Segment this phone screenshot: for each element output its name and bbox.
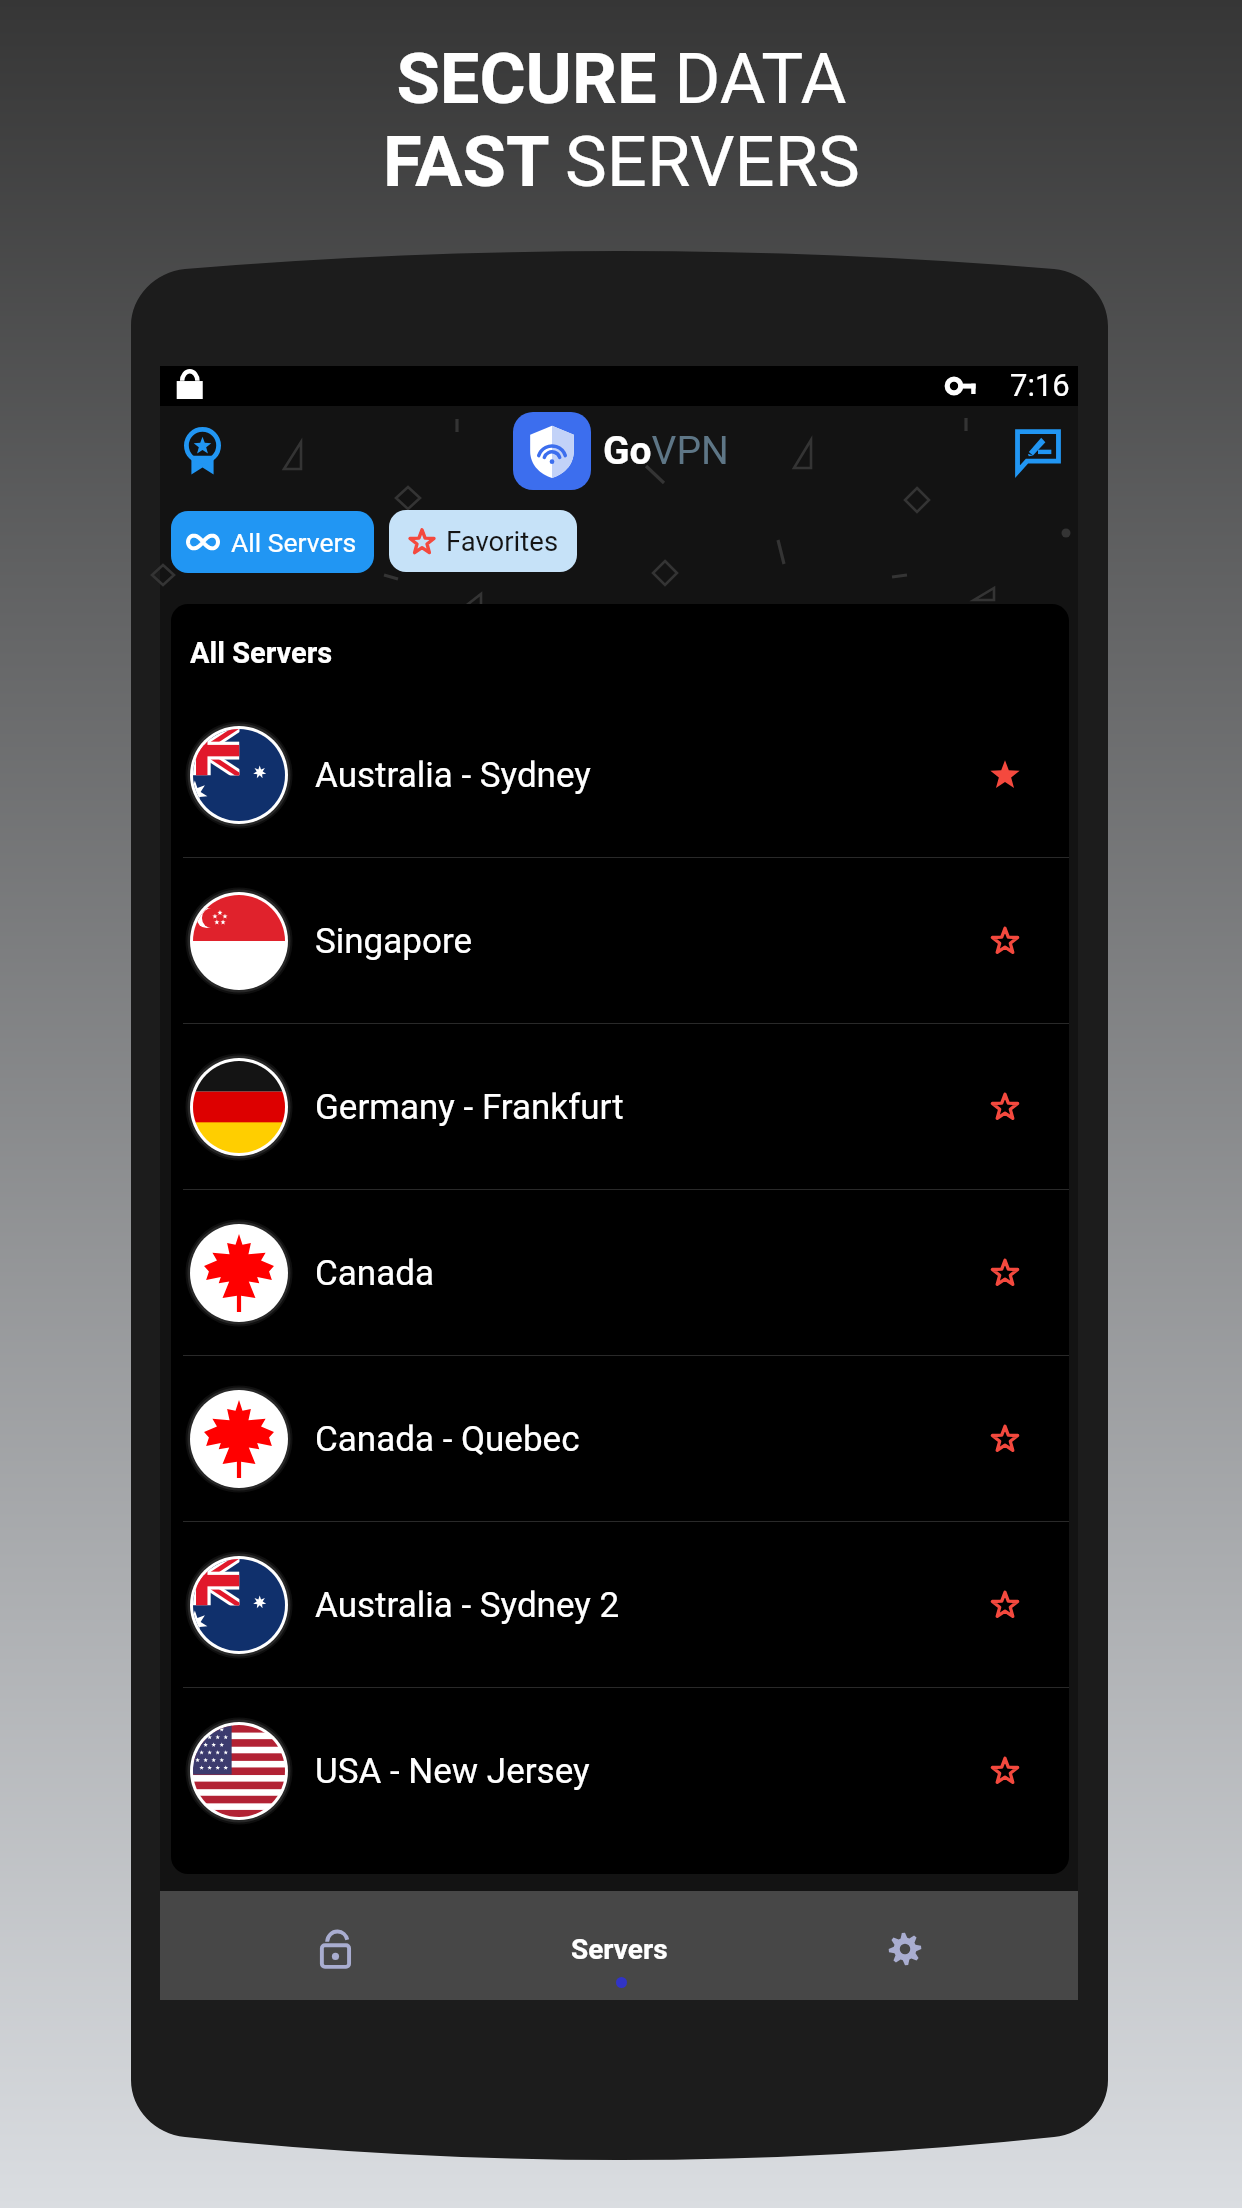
button[interactable]: Favorite xyxy=(940,1024,1069,1190)
button[interactable]: Favorite xyxy=(940,1356,1069,1522)
staticText: Australia - Sydney xyxy=(315,755,591,796)
button[interactable]: Connect xyxy=(256,1891,417,2000)
staticText: SECURE DATA xyxy=(396,38,847,121)
button[interactable]: Canada xyxy=(171,1190,1069,1356)
button[interactable]: Australia - Sydney 2 xyxy=(171,1522,1069,1688)
button[interactable]: Premium xyxy=(162,401,242,501)
staticText: GoVPN xyxy=(603,428,729,474)
staticText: USA - New Jersey xyxy=(315,1751,590,1792)
staticText: Singapore xyxy=(315,921,473,962)
button[interactable]: Singapore xyxy=(171,858,1069,1024)
button[interactable]: Servers xyxy=(539,1891,700,2000)
staticText: Servers xyxy=(571,1933,668,1966)
staticText: Germany - Frankfurt xyxy=(315,1087,624,1128)
button[interactable]: Favorite xyxy=(940,1688,1069,1854)
staticText: All Servers xyxy=(231,527,357,558)
button[interactable]: Favorites xyxy=(389,510,577,572)
staticText: 7:16 xyxy=(1010,367,1070,403)
staticText: Canada xyxy=(315,1253,434,1294)
button[interactable]: Australia - Sydney xyxy=(171,692,1069,858)
staticText: All Servers xyxy=(190,636,333,670)
button[interactable]: Germany - Frankfurt xyxy=(171,1024,1069,1190)
staticText: Canada - Quebec xyxy=(315,1419,580,1460)
button[interactable]: Favorite xyxy=(940,858,1069,1024)
staticText: Favorites xyxy=(446,525,559,557)
button[interactable]: USA - New Jersey xyxy=(171,1688,1069,1854)
button[interactable]: Canada - Quebec xyxy=(171,1356,1069,1522)
staticText: FAST SERVERS xyxy=(383,121,860,204)
button[interactable]: Favorite xyxy=(940,1190,1069,1356)
button[interactable]: Favorite xyxy=(940,692,1069,858)
staticText: Australia - Sydney 2 xyxy=(315,1585,620,1626)
button[interactable]: Feedback xyxy=(998,401,1078,501)
button[interactable]: Settings xyxy=(824,1891,985,2000)
button[interactable]: All Servers xyxy=(171,511,374,573)
button[interactable]: Favorite xyxy=(940,1522,1069,1688)
